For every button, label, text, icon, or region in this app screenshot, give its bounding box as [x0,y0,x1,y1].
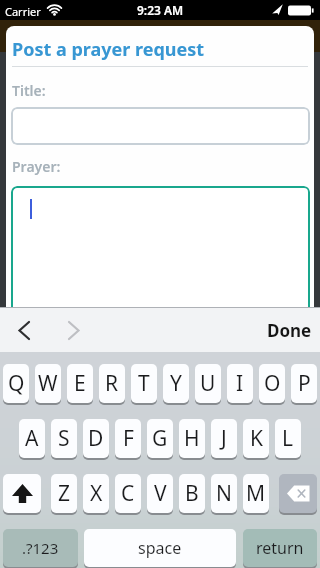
button[interactable] [11,107,310,145]
staticText: H [184,424,200,453]
button[interactable]: A [19,419,45,458]
button[interactable]: X [83,474,109,513]
button[interactable]: I [227,364,253,403]
button[interactable]: .?123 [3,529,78,567]
button[interactable]: H [179,419,205,458]
staticText: B [185,479,199,508]
button[interactable]: Y [163,364,189,403]
button[interactable]: F [115,419,141,458]
staticText: J [221,424,227,453]
staticText: D [88,424,104,453]
button[interactable]: Q [3,364,29,403]
staticText: Q [8,369,25,398]
staticText: N [216,479,232,508]
button[interactable] [279,474,317,513]
button[interactable]: G [147,419,173,458]
button[interactable]: Z [51,474,77,513]
staticText: P [298,369,311,398]
button[interactable] [67,321,80,340]
button[interactable]: V [147,474,173,513]
staticText: I [236,369,244,398]
button[interactable] [18,321,31,340]
staticText: Carrier [5,4,41,19]
staticText: T [138,369,150,398]
staticText: Z [58,479,71,508]
staticText: M [246,479,266,508]
staticText: U [200,369,216,398]
button[interactable]: T [131,364,157,403]
button[interactable]: Done [0,308,312,352]
staticText: R [105,369,119,398]
staticText: return [256,537,304,559]
staticText: W [38,369,58,398]
button[interactable]: B [179,474,205,513]
button[interactable]: L [275,419,301,458]
staticText: space [138,537,182,559]
button[interactable]: N [211,474,237,513]
button[interactable]: P [291,364,317,403]
button[interactable]: W [35,364,61,403]
button[interactable]: U [195,364,221,403]
button[interactable]: E [67,364,93,403]
button[interactable]: J [211,419,237,458]
staticText: Prayer: [12,157,61,176]
staticText: Title: [12,81,46,100]
button[interactable] [11,186,310,320]
button[interactable]: M [243,474,269,513]
staticText: F [123,424,134,453]
button[interactable]: space [84,529,236,567]
staticText: E [74,369,86,398]
button[interactable] [3,474,41,513]
staticText: Done [267,319,312,342]
staticText: Y [170,369,182,398]
staticText: 9:23 AM [137,2,184,18]
button[interactable]: D [83,419,109,458]
button[interactable]: K [243,419,269,458]
staticText: O [264,369,281,398]
staticText: S [58,424,70,453]
staticText: X [90,479,103,508]
button[interactable]: C [115,474,141,513]
button[interactable]: S [51,419,77,458]
staticText: A [25,424,39,453]
staticText: L [282,424,294,453]
staticText: C [121,479,135,508]
button[interactable]: O [259,364,285,403]
button[interactable]: return [243,529,317,567]
staticText: Post a prayer request [12,37,205,62]
staticText: V [154,479,167,508]
button[interactable]: R [99,364,125,403]
staticText: G [152,424,168,453]
staticText: .?123 [22,538,59,558]
staticText: K [250,424,263,453]
